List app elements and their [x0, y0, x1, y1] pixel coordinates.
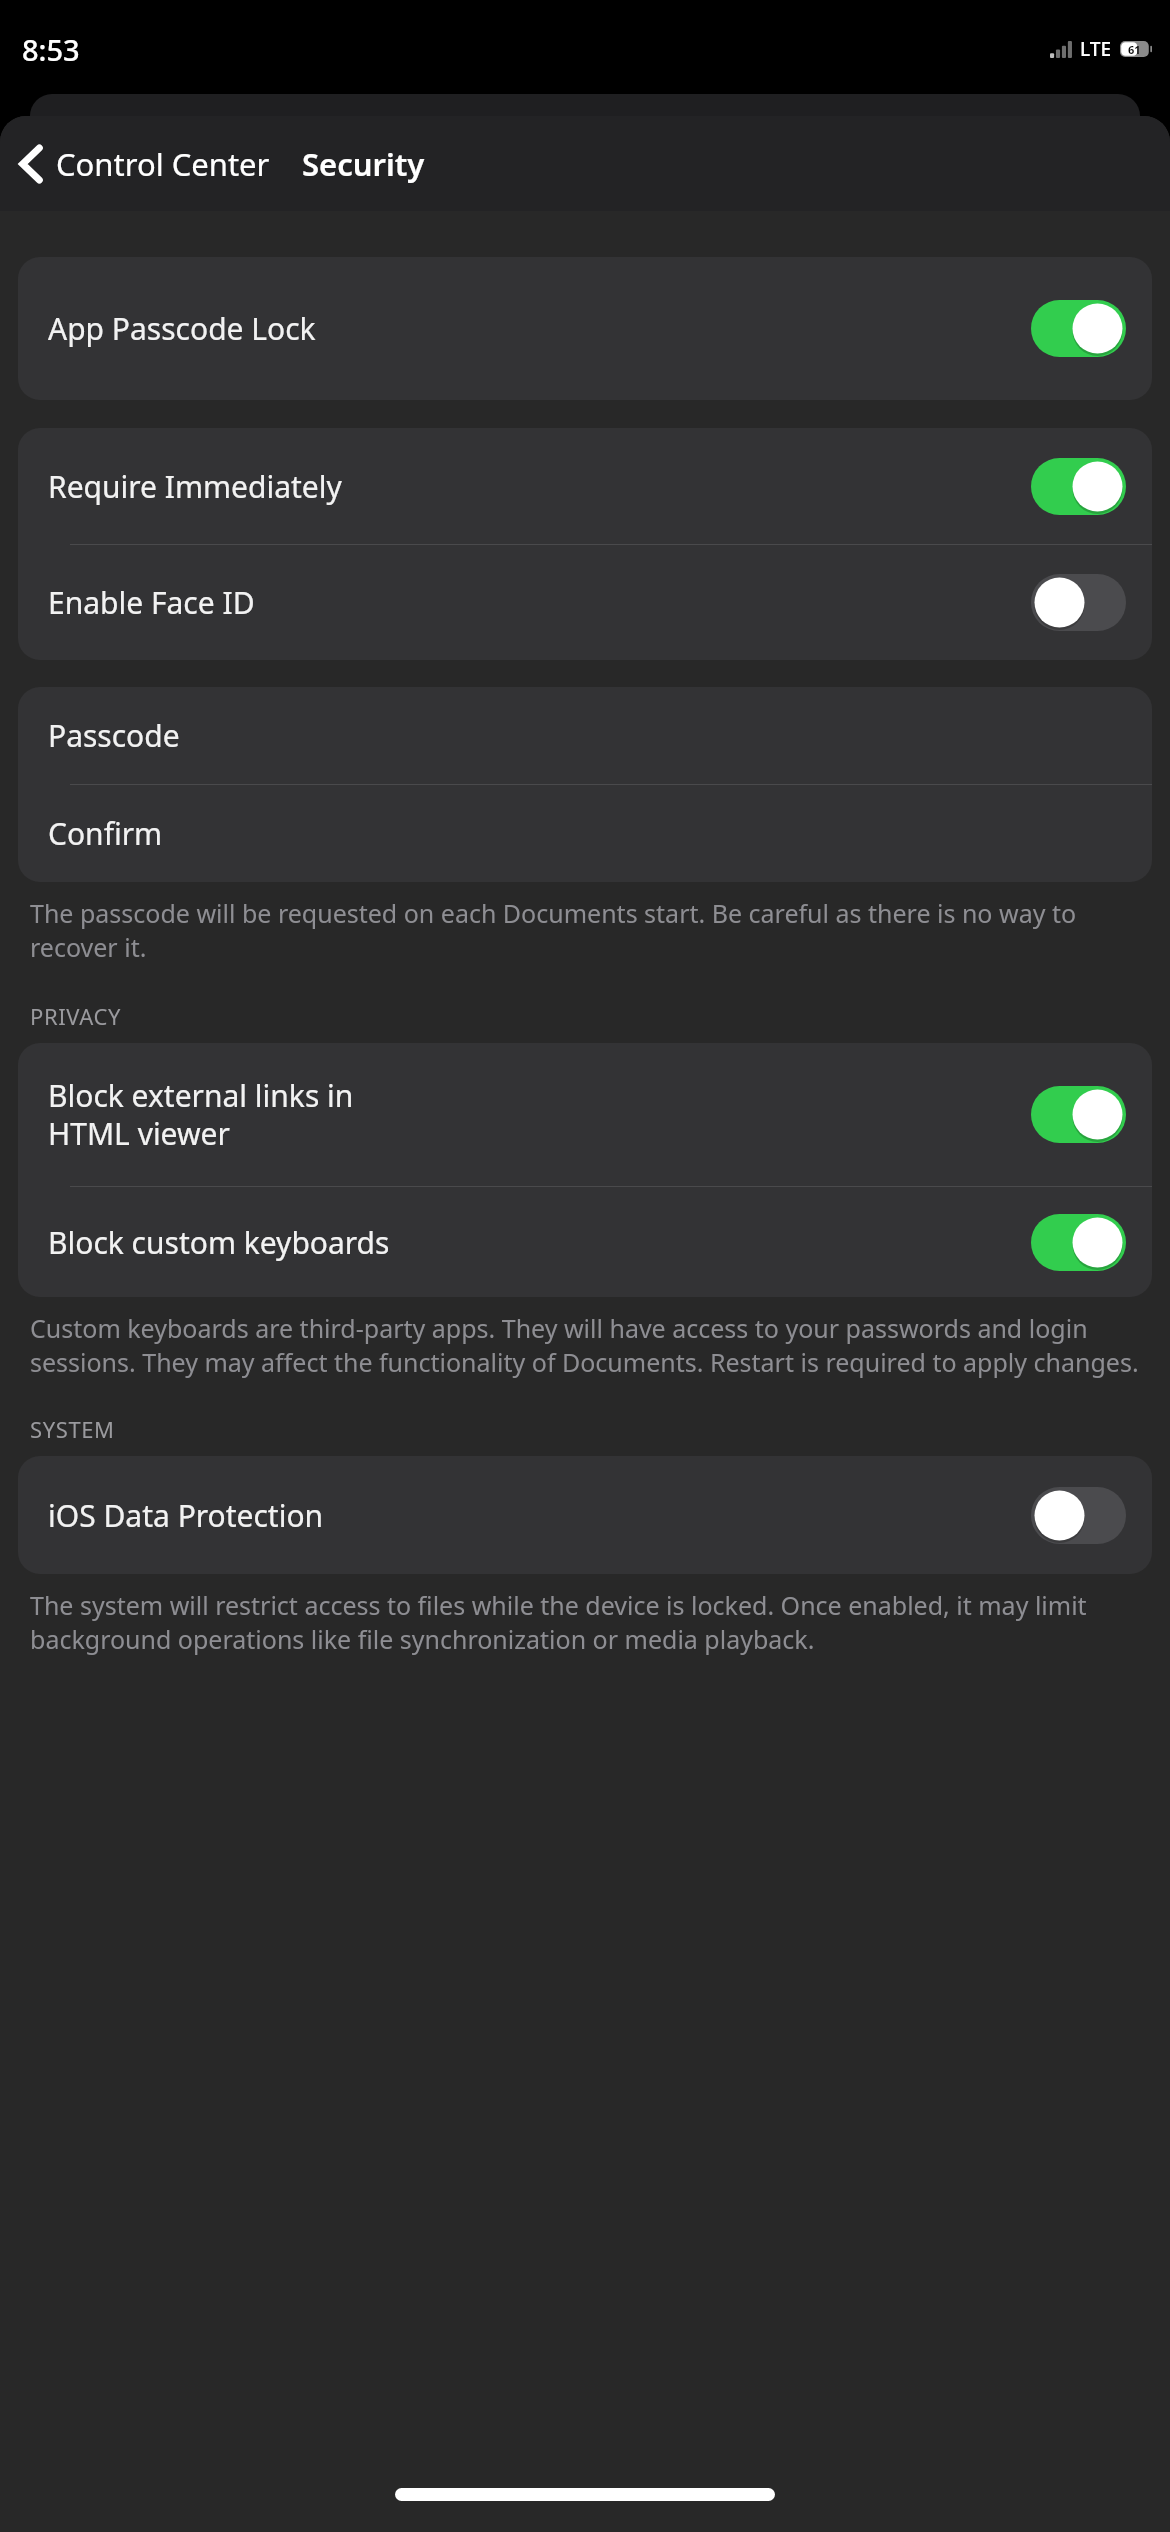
- staticText: Enable Face ID: [48, 582, 1031, 623]
- staticText: Control Center: [56, 143, 270, 185]
- staticText: Require Immediately: [48, 466, 1031, 507]
- button[interactable]: [1031, 458, 1126, 515]
- staticText: LTE: [1080, 36, 1112, 62]
- button[interactable]: Passcode: [18, 687, 1152, 784]
- staticText: Custom keyboards are third-party apps. T…: [30, 1311, 1150, 1380]
- button[interactable]: App Passcode Lock: [18, 257, 1152, 400]
- button[interactable]: [1031, 574, 1126, 631]
- staticText: App Passcode Lock: [48, 308, 1031, 349]
- staticText: Block external links in HTML viewer: [48, 1075, 1031, 1154]
- button[interactable]: [1031, 300, 1126, 357]
- staticText: iOS Data Protection: [48, 1495, 1031, 1536]
- button[interactable]: [1031, 1487, 1126, 1544]
- staticText: SYSTEM: [30, 1414, 115, 1444]
- button[interactable]: iOS Data Protection: [18, 1456, 1152, 1574]
- staticText: Passcode: [48, 715, 1126, 756]
- button[interactable]: Require Immediately: [18, 428, 1152, 544]
- staticText: 61: [1128, 42, 1141, 57]
- button[interactable]: [1031, 1214, 1126, 1271]
- staticText: 8:53: [22, 30, 80, 69]
- button[interactable]: Back to Control Center: [0, 143, 278, 185]
- staticText: Block custom keyboards: [48, 1222, 1031, 1263]
- button[interactable]: Confirm: [18, 785, 1152, 882]
- button[interactable]: Block external links in HTML viewer: [18, 1043, 1152, 1186]
- staticText: PRIVACY: [30, 1001, 121, 1031]
- button[interactable]: Enable Face ID: [18, 545, 1152, 660]
- staticText: Confirm: [48, 813, 1126, 854]
- button[interactable]: [1031, 1086, 1126, 1143]
- staticText: The system will restrict access to files…: [30, 1588, 1150, 1657]
- staticText: The passcode will be requested on each D…: [30, 896, 1150, 965]
- staticText: Security: [302, 143, 425, 185]
- button[interactable]: Block custom keyboards: [18, 1187, 1152, 1297]
